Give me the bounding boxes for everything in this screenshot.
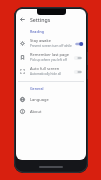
button[interactable]: Back — [18, 15, 27, 24]
button[interactable]: Remember last page — [16, 50, 86, 64]
staticText: Automatically hide all controls in PDF v… — [30, 72, 72, 76]
button[interactable]: On — [74, 40, 83, 47]
staticText: Pick up where you left off — [30, 58, 67, 62]
button[interactable]: Auto full screen — [16, 64, 86, 78]
button[interactable]: Language — [16, 93, 86, 105]
staticText: Prevent screen turn off while reading — [30, 44, 72, 48]
button[interactable]: Off — [74, 54, 83, 61]
staticText: Language — [30, 97, 49, 102]
staticText: General — [30, 86, 44, 91]
button[interactable]: About — [16, 105, 86, 117]
staticText: Settings — [30, 16, 51, 23]
staticText: Reading — [30, 29, 45, 34]
staticText: Remember last page — [30, 52, 69, 57]
staticText: About — [30, 109, 42, 114]
staticText: Stay awake — [30, 38, 51, 43]
button[interactable]: Off — [74, 68, 83, 75]
staticText: Auto full screen — [30, 66, 60, 71]
button[interactable]: Stay awake — [16, 36, 86, 50]
